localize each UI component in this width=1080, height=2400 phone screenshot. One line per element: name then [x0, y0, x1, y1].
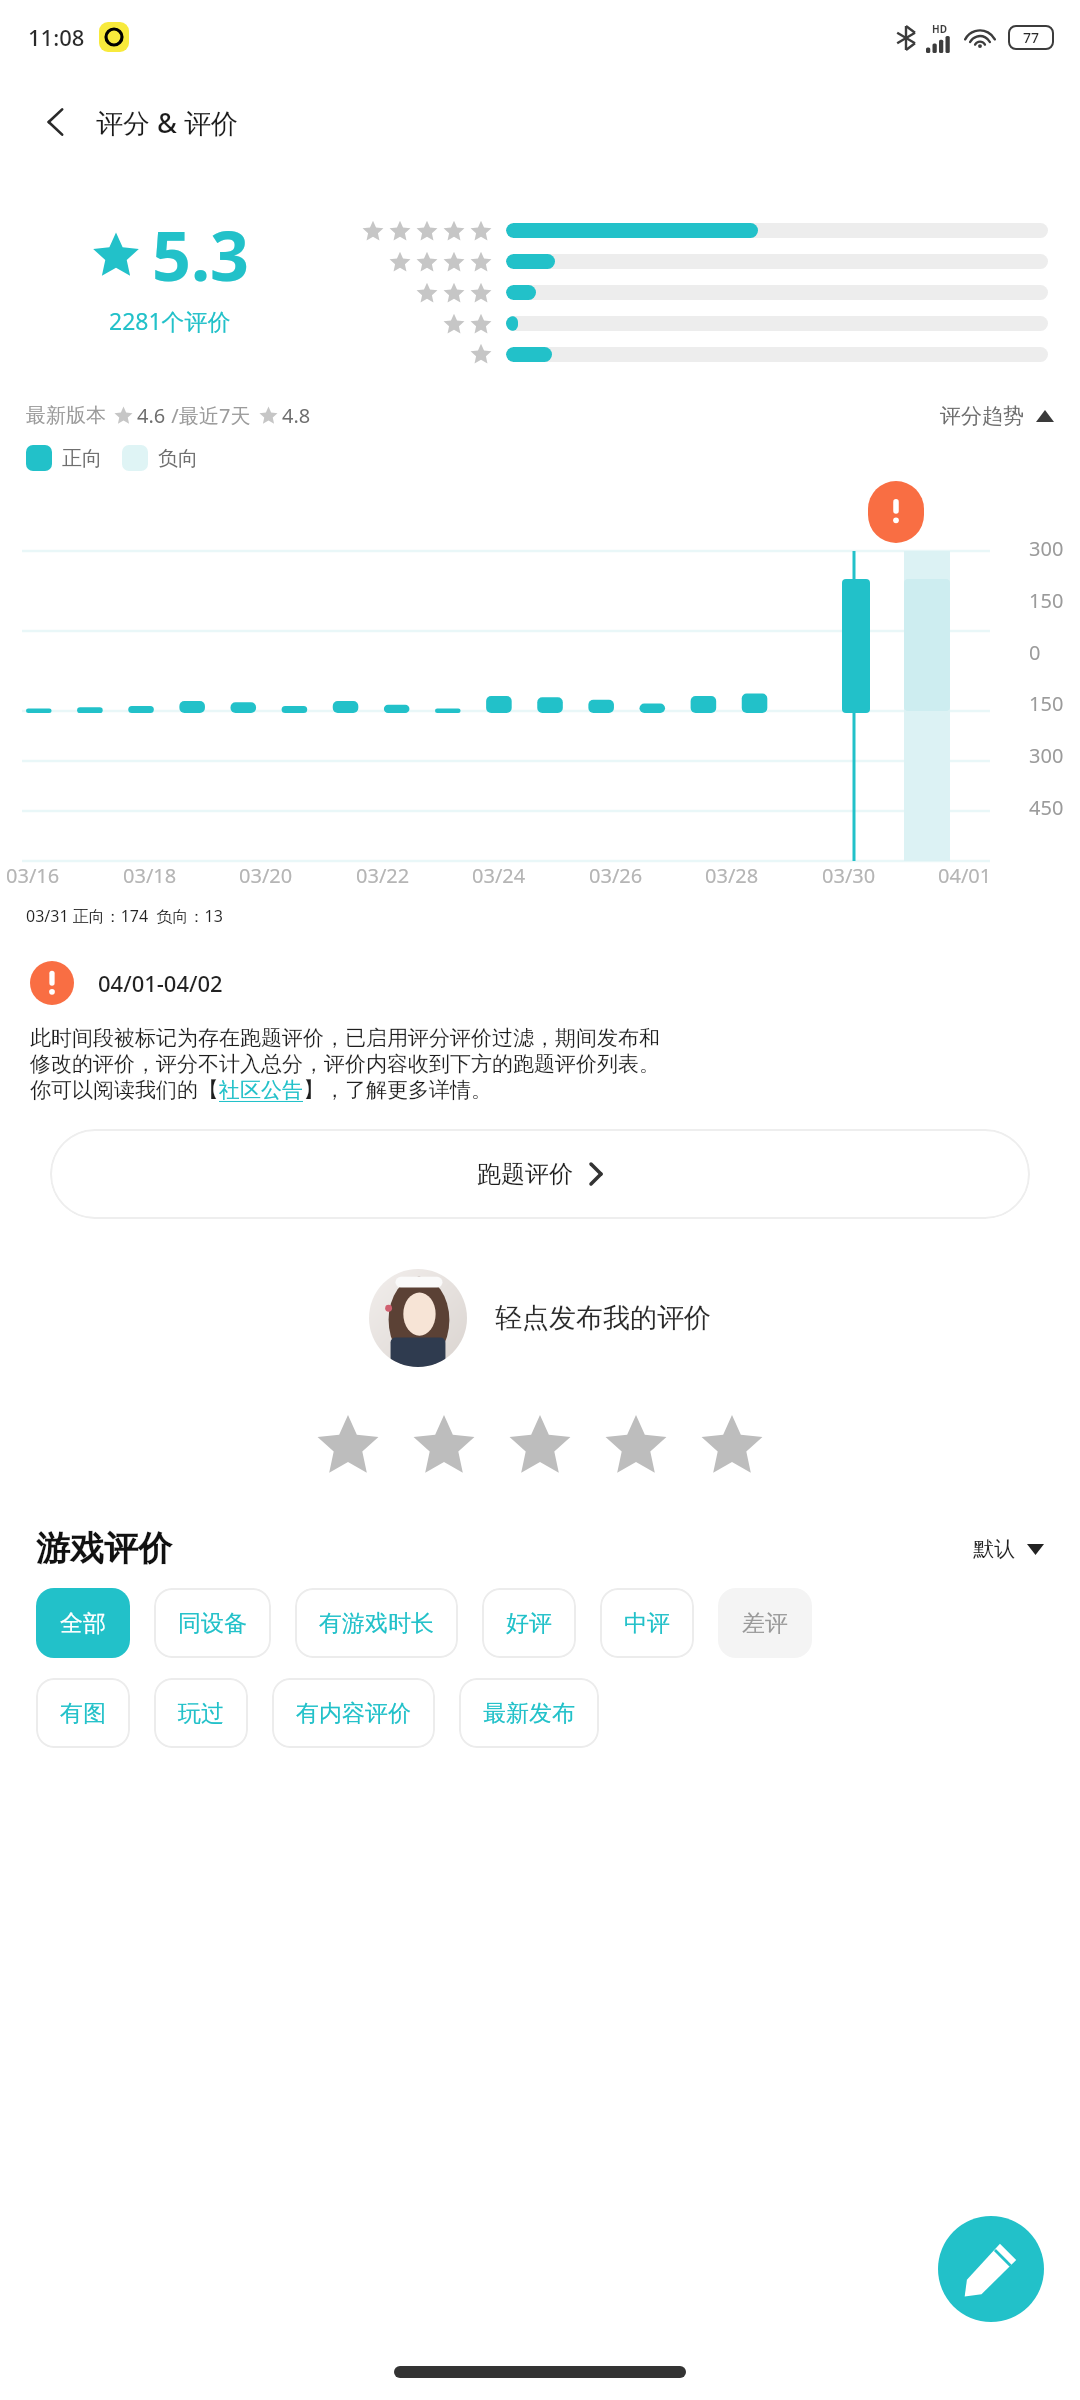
button[interactable]: 返回 — [24, 90, 88, 154]
button[interactable]: 跑题评价 — [50, 1129, 1030, 1219]
staticText: 4.8 — [282, 402, 311, 429]
staticText: 评分趋势 — [940, 403, 1024, 429]
button[interactable]: 社区公告 — [219, 1077, 303, 1103]
staticText: 150 — [1029, 690, 1064, 717]
staticText: 03/30 — [822, 862, 876, 889]
staticText: 03/28 — [705, 862, 759, 889]
staticText: HD — [932, 22, 947, 36]
staticText: 4.6 — [137, 402, 166, 429]
staticText: 最新版本 — [26, 403, 106, 428]
button[interactable] — [588, 1397, 684, 1493]
staticText: 03/31 正向：174 负向：13 — [26, 905, 223, 927]
staticText: 此时间段被标记为存在跑题评价，已启用评分评价过滤，期间发布和 — [30, 1025, 660, 1051]
staticText: 11:08 — [28, 22, 85, 52]
button[interactable]: 同设备 — [154, 1588, 271, 1658]
staticText: 450 — [1029, 794, 1064, 821]
staticText: 03/26 — [589, 862, 643, 889]
staticText: / — [166, 402, 179, 429]
staticText: 同设备 — [178, 1609, 247, 1638]
button[interactable] — [492, 1397, 588, 1493]
button[interactable]: 轻点发布我的评价 — [0, 1269, 1080, 1367]
staticText: 150 — [1029, 587, 1064, 614]
staticText: 5.3 — [152, 208, 249, 301]
staticText: 有内容评价 — [296, 1699, 411, 1728]
staticText: 有图 — [60, 1699, 106, 1728]
staticText: 2281个评价 — [109, 305, 231, 336]
button[interactable]: 有游戏时长 — [295, 1588, 458, 1658]
staticText: 评分 & 评价 — [96, 104, 238, 141]
button[interactable]: 玩过 — [154, 1678, 248, 1748]
staticText: 03/18 — [123, 862, 177, 889]
staticText: 04/01-04/02 — [98, 968, 223, 998]
button[interactable]: 有内容评价 — [272, 1678, 435, 1748]
staticText: 负向 — [158, 446, 198, 471]
staticText: 好评 — [506, 1609, 552, 1638]
staticText: 77 — [1023, 28, 1040, 47]
staticText: 300 — [1029, 535, 1064, 562]
staticText: 最近7天 — [179, 402, 251, 429]
button[interactable] — [684, 1397, 780, 1493]
button[interactable]: 评分趋势 — [940, 403, 1054, 429]
staticText: 游戏评价 — [36, 1527, 172, 1570]
staticText: 修改的评价，评分不计入总分，评价内容收到下方的跑题评价列表。 — [30, 1051, 660, 1077]
staticText: 轻点发布我的评价 — [495, 1301, 711, 1335]
button[interactable]: 最新发布 — [459, 1678, 599, 1748]
staticText: 跑题评价 — [477, 1159, 573, 1189]
staticText: 差评 — [742, 1609, 788, 1638]
staticText: 全部 — [60, 1609, 106, 1638]
staticText: 正向 — [62, 446, 102, 471]
staticText: 有游戏时长 — [319, 1609, 434, 1638]
staticText: 300 — [1029, 742, 1064, 769]
button[interactable]: 默认 — [973, 1536, 1044, 1562]
staticText: 中评 — [624, 1609, 670, 1638]
staticText: 04/01 — [938, 862, 992, 889]
staticText: 03/22 — [356, 862, 410, 889]
button[interactable] — [300, 1397, 396, 1493]
staticText: 】，了解更多详情。 — [303, 1077, 492, 1103]
staticText: 03/20 — [239, 862, 293, 889]
button[interactable]: 好评 — [482, 1588, 576, 1658]
button[interactable] — [396, 1397, 492, 1493]
staticText: 0 — [1029, 639, 1041, 666]
staticText: 默认 — [973, 1536, 1015, 1562]
button[interactable]: 中评 — [600, 1588, 694, 1658]
button[interactable]: 全部 — [36, 1588, 130, 1658]
button[interactable]: 有图 — [36, 1678, 130, 1748]
staticText: 玩过 — [178, 1699, 224, 1728]
staticText: 你可以阅读我们的【 — [30, 1077, 219, 1103]
staticText: 03/16 — [6, 862, 60, 889]
staticText: 最新发布 — [483, 1699, 575, 1728]
button[interactable]: 写评价 — [938, 2216, 1044, 2322]
staticText: 03/24 — [472, 862, 526, 889]
button[interactable]: 差评 — [718, 1588, 812, 1658]
